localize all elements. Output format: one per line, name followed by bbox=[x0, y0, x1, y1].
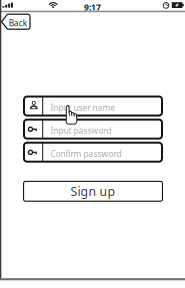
staticText: Input user name bbox=[51, 102, 116, 113]
staticText: Back bbox=[9, 17, 27, 29]
staticText: 9:17 bbox=[84, 1, 101, 13]
staticText: Confirm password bbox=[51, 148, 122, 159]
button[interactable]: Back bbox=[1, 14, 30, 29]
button[interactable]: Input password bbox=[23, 119, 163, 140]
staticText: Input password bbox=[51, 125, 112, 136]
button[interactable]: Input user name bbox=[23, 95, 163, 116]
staticText: Sign up bbox=[70, 183, 115, 200]
button[interactable]: Confirm password bbox=[23, 142, 163, 163]
button[interactable]: Sign up bbox=[23, 181, 163, 202]
